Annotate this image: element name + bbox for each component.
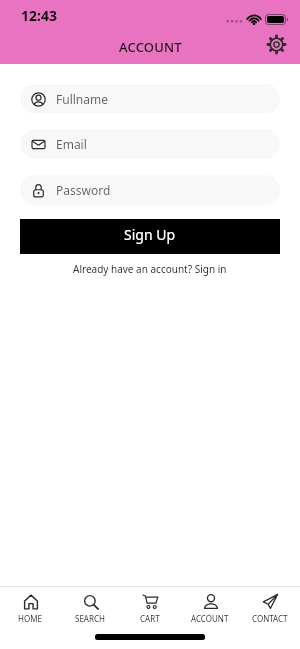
staticText: CART xyxy=(140,613,160,624)
staticText: 12:43 xyxy=(21,6,57,25)
button[interactable]: Password xyxy=(20,175,280,205)
staticText: ACCOUNT xyxy=(119,38,182,56)
staticText: Sign Up xyxy=(124,225,176,244)
staticText: Password xyxy=(56,182,111,198)
button[interactable]: ACCOUNT xyxy=(180,593,240,624)
button[interactable]: Sign Up xyxy=(20,219,280,254)
button[interactable]: HOME xyxy=(0,593,60,624)
staticText: Fullname xyxy=(56,91,108,107)
staticText: CONTACT xyxy=(252,613,288,624)
button[interactable] xyxy=(267,35,286,54)
button[interactable]: Fullname xyxy=(20,84,280,114)
staticText: HOME xyxy=(18,613,42,624)
staticText: Email xyxy=(56,136,87,152)
staticText: ACCOUNT xyxy=(191,613,229,624)
button[interactable]: Already have an account? Sign in xyxy=(0,262,300,276)
button[interactable]: SEARCH xyxy=(60,593,120,624)
staticText: Already have an account? Sign in xyxy=(73,262,227,276)
staticText: SEARCH xyxy=(75,613,105,624)
button[interactable]: Email xyxy=(20,129,280,159)
button[interactable]: CONTACT xyxy=(240,593,300,624)
button[interactable]: CART xyxy=(120,593,180,624)
